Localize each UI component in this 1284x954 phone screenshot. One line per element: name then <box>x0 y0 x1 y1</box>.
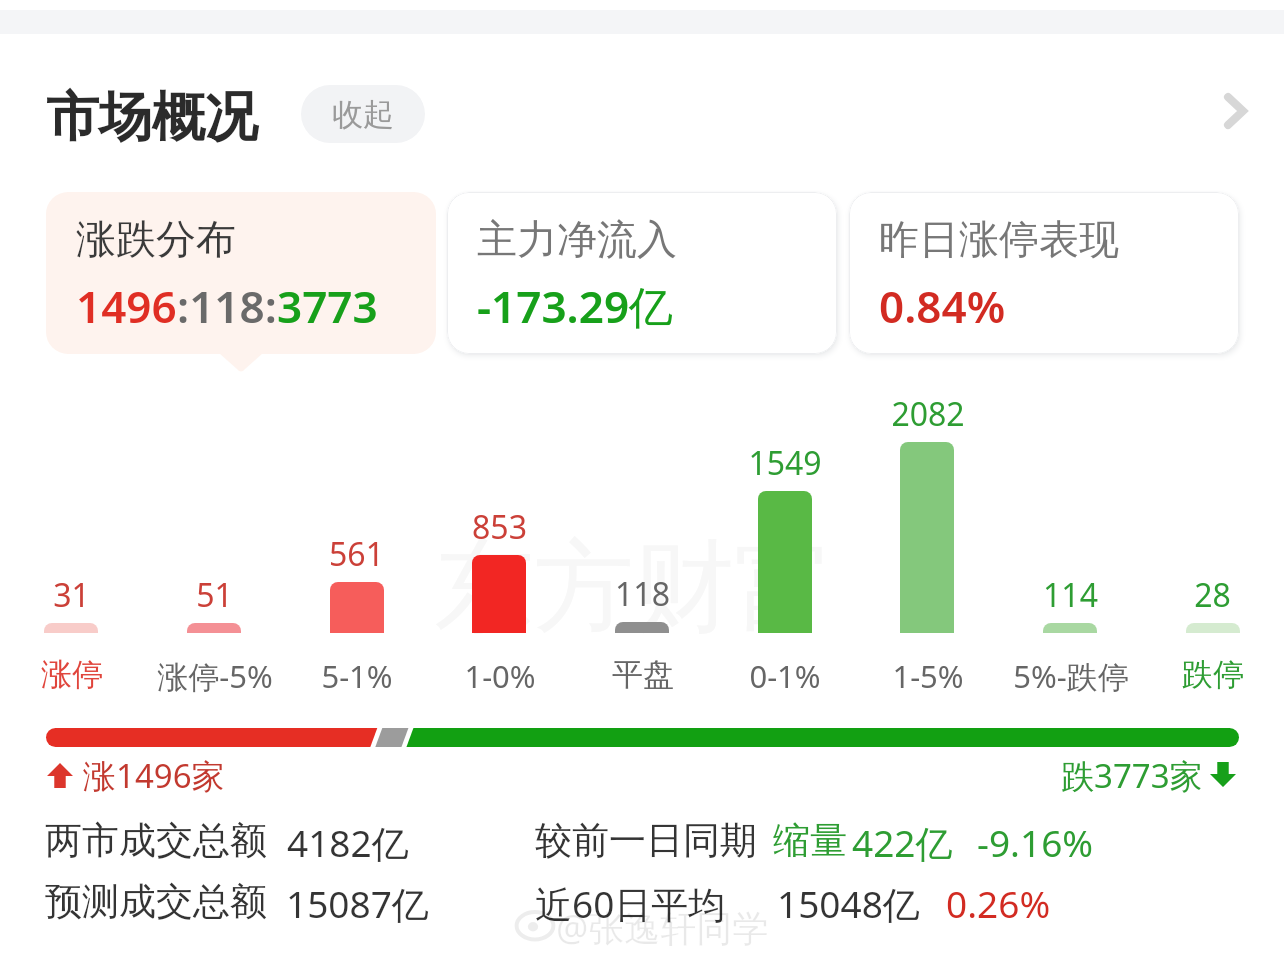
button[interactable] <box>428 390 571 700</box>
staticText: 近60日平均 <box>535 878 726 929</box>
staticText: 5%-跌停 <box>1013 655 1129 697</box>
staticText: :118: <box>177 276 277 336</box>
button[interactable]: 收起 <box>301 85 425 143</box>
button[interactable] <box>0 390 143 700</box>
staticText: 较前一日同期 <box>535 817 757 864</box>
other: 下跌 <box>1210 762 1236 787</box>
staticText: 跌停 <box>1182 655 1244 694</box>
staticText: 561 <box>329 532 384 572</box>
staticText: 1-0% <box>464 655 536 697</box>
staticText: 422亿 <box>852 817 953 868</box>
button[interactable]: 市场概况 <box>46 76 268 146</box>
staticText: 东方财富 <box>434 525 834 651</box>
staticText: 1-5% <box>892 655 964 697</box>
other: 上涨 <box>47 763 73 788</box>
staticText: 收起 <box>332 95 394 134</box>
button[interactable]: 展开更多 <box>1200 83 1260 143</box>
staticText: 3773 <box>277 276 378 336</box>
staticText: 平盘 <box>612 655 674 694</box>
staticText: 涨停 <box>41 655 103 694</box>
staticText: 15087亿 <box>286 878 429 929</box>
button[interactable]: 涨跌分布 <box>46 192 436 354</box>
button[interactable] <box>999 390 1142 700</box>
staticText: 15048亿 <box>777 878 920 929</box>
button[interactable] <box>285 390 428 700</box>
staticText: 涨跌分布 <box>76 214 236 264</box>
staticText: 2082 <box>891 392 965 432</box>
staticText: 涨1496家 <box>83 753 225 798</box>
staticText: 涨停-5% <box>157 655 273 697</box>
button[interactable] <box>571 390 714 700</box>
button[interactable]: 主力净流入 <box>447 192 837 354</box>
staticText: 0.26% <box>946 878 1051 928</box>
button[interactable] <box>1141 390 1284 700</box>
staticText: 114 <box>1043 573 1098 613</box>
staticText: -9.16% <box>977 817 1094 867</box>
staticText: 31 <box>53 573 90 613</box>
staticText: 缩量 <box>773 817 847 864</box>
staticText: 853 <box>472 505 527 545</box>
button[interactable] <box>143 390 286 700</box>
staticText: 昨日涨停表现 <box>879 214 1119 264</box>
staticText: 市场概况 <box>46 84 258 151</box>
button[interactable]: 昨日涨停表现 <box>849 192 1239 354</box>
staticText: -173.29亿 <box>477 276 674 336</box>
staticText: 118 <box>615 572 670 612</box>
staticText: 0.84% <box>879 276 1006 336</box>
staticText: 5-1% <box>321 655 393 697</box>
staticText: 1496 <box>76 276 177 336</box>
staticText: 预测成交总额 <box>45 878 267 925</box>
staticText: 跌3773家 <box>1061 753 1203 798</box>
staticText: @张逸轩同学 <box>556 903 769 952</box>
button[interactable] <box>856 390 999 700</box>
staticText: 4182亿 <box>287 817 409 868</box>
staticText: 1549 <box>748 441 822 481</box>
staticText: 28 <box>1194 573 1231 613</box>
staticText: 0-1% <box>749 655 821 697</box>
staticText: 51 <box>196 573 233 613</box>
button[interactable] <box>713 390 856 700</box>
staticText: 主力净流入 <box>477 214 677 264</box>
staticText: 两市成交总额 <box>45 817 267 864</box>
